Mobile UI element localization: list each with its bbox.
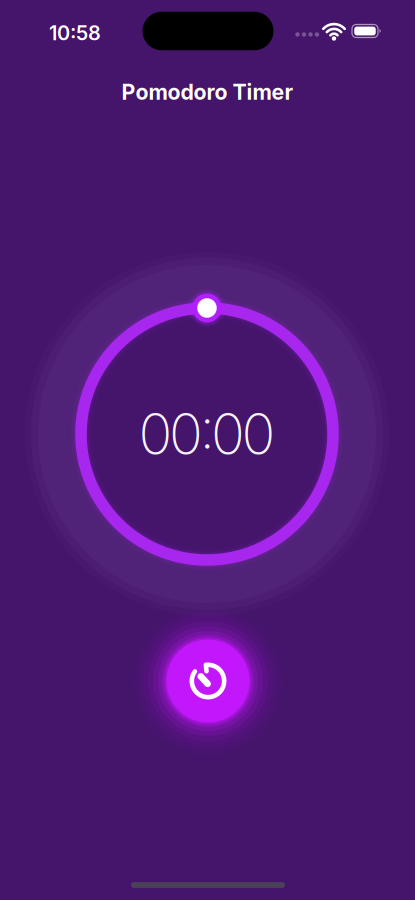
button[interactable]: Set timer (188, 289, 226, 327)
button[interactable]: Start timer (166, 639, 249, 722)
staticText: Pomodoro Timer (121, 79, 293, 105)
staticText: 10:58 (49, 21, 101, 45)
staticText: 00:00 (138, 401, 275, 467)
